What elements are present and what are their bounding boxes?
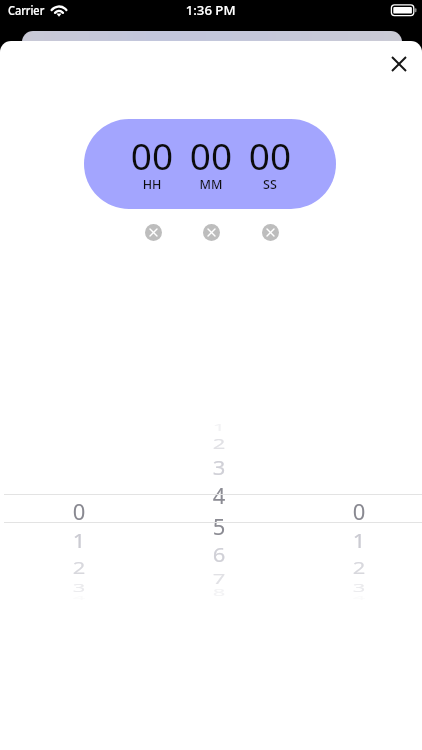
staticText: 0 bbox=[314, 496, 404, 526]
staticText: 5 bbox=[174, 511, 264, 541]
staticText: SS bbox=[235, 176, 305, 193]
button[interactable]: 00 bbox=[84, 119, 336, 209]
staticText: 4 bbox=[174, 480, 264, 510]
button[interactable]: Seconds picker bbox=[314, 415, 404, 607]
staticText: HH bbox=[117, 176, 187, 193]
staticText: MM bbox=[176, 176, 246, 193]
staticText: 1:36 PM bbox=[186, 2, 236, 18]
staticText: 00 bbox=[235, 130, 305, 180]
staticText: 2 bbox=[34, 555, 124, 579]
staticText: 3 bbox=[174, 454, 264, 480]
button[interactable]: Clear minutes bbox=[194, 215, 228, 249]
button[interactable]: Clear seconds bbox=[253, 215, 287, 249]
staticText: 2 bbox=[314, 555, 404, 579]
button[interactable]: Minutes picker bbox=[174, 415, 264, 607]
button[interactable]: Clear hours bbox=[136, 215, 170, 249]
staticText: 00 bbox=[117, 130, 187, 180]
staticText: 1 bbox=[34, 526, 124, 554]
button[interactable]: Close bbox=[379, 44, 419, 84]
button[interactable]: Hours picker bbox=[34, 415, 124, 607]
staticText: 1 bbox=[314, 526, 404, 554]
staticText: 2 bbox=[174, 433, 264, 453]
staticText: 0 bbox=[34, 496, 124, 526]
staticText: 00 bbox=[176, 130, 246, 180]
staticText: 7 bbox=[174, 568, 264, 588]
staticText: Carrier bbox=[8, 2, 44, 18]
staticText: 6 bbox=[174, 541, 264, 567]
